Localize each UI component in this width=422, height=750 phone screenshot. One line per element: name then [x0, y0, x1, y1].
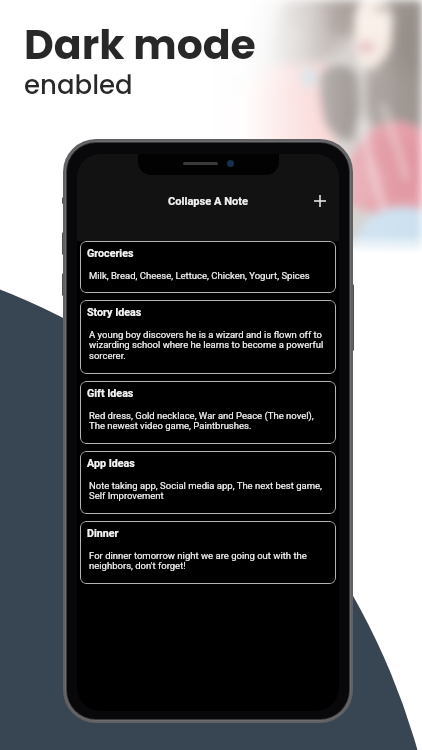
staticText: Red dress, Gold necklace, War and Peace … — [89, 410, 329, 432]
button[interactable]: Groceries — [80, 241, 336, 293]
staticText: A young boy discovers he is a wizard and… — [89, 329, 329, 362]
button[interactable]: Add note — [307, 188, 333, 214]
staticText: Dark mode — [24, 16, 256, 73]
staticText: App Ideas — [87, 457, 135, 470]
staticText: enabled — [24, 67, 133, 103]
staticText: Gift Ideas — [87, 387, 134, 400]
staticText: Note taking app, Social media app, The n… — [89, 480, 329, 502]
staticText: Milk, Bread, Cheese, Lettuce, Chicken, Y… — [89, 270, 310, 281]
staticText: Collapse A Note — [168, 195, 249, 208]
staticText: For dinner tomorrow night we are going o… — [89, 550, 329, 572]
button[interactable]: Dinner — [80, 521, 336, 584]
staticText: Dinner — [87, 527, 119, 540]
button[interactable]: Story Ideas — [80, 300, 336, 374]
staticText: Groceries — [87, 247, 134, 260]
button[interactable]: App Ideas — [80, 451, 336, 514]
button[interactable]: Gift Ideas — [80, 381, 336, 444]
staticText: Story Ideas — [87, 306, 142, 319]
